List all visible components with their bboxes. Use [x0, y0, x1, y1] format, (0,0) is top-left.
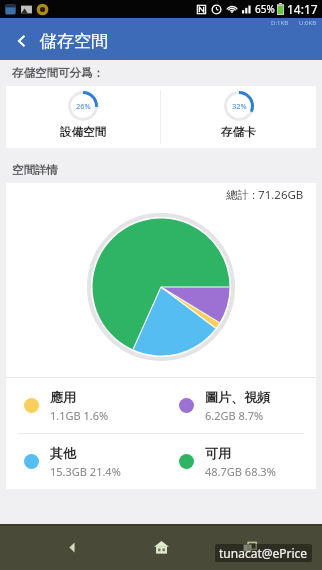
staticText: 1.1GB 1.6% [50, 408, 109, 423]
button[interactable]: 可用 [161, 434, 316, 489]
button[interactable]: 其他 [6, 434, 161, 489]
button[interactable]: 應用 [6, 378, 161, 433]
staticText: 14:17 [287, 1, 318, 17]
staticText: 65% [255, 2, 275, 16]
staticText: 儲存空間 [40, 31, 108, 52]
button[interactable]: 32% [161, 86, 316, 148]
button[interactable]: Back [11, 30, 33, 52]
staticText: tunacat@ePrice [219, 545, 308, 561]
staticText: 15.3GB 21.4% [50, 464, 121, 479]
staticText: 空間詳情 [12, 163, 58, 177]
staticText: 48.7GB 68.3% [205, 464, 276, 479]
staticText: D:1KB [271, 19, 289, 27]
staticText: 存儲空間可分爲： [12, 66, 104, 80]
staticText: 26% [76, 101, 91, 111]
staticText: U:0KB [299, 19, 317, 27]
button[interactable]: Back [55, 530, 89, 564]
button[interactable]: Recent apps [233, 530, 267, 564]
button[interactable]: 26% [6, 86, 160, 148]
staticText: 存儲卡 [221, 125, 256, 139]
staticText: 32% [232, 101, 247, 111]
staticText: 設備空間 [60, 125, 106, 139]
staticText: 圖片、視頻 [205, 389, 270, 405]
staticText: 其他 [50, 445, 76, 461]
staticText: 可用 [205, 445, 231, 461]
staticText: 6.2GB 8.7% [205, 408, 264, 423]
staticText: 應用 [50, 389, 76, 405]
staticText: 總計 : 71.26GB [226, 187, 304, 203]
button[interactable]: 圖片、視頻 [161, 378, 316, 433]
button[interactable]: Home [144, 530, 178, 564]
